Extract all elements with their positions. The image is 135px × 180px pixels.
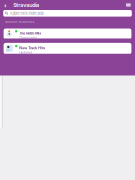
staticText: Stravaudia [13, 2, 39, 8]
button[interactable]: The Retro Mix [4, 28, 131, 39]
button[interactable]: Apple rock indie pop [3, 10, 132, 17]
button[interactable]: New Track Hits [4, 43, 131, 54]
staticText: RECENT SEARCHES [5, 20, 34, 24]
staticText: The Retro Mix [19, 31, 41, 35]
staticText: Apple rock indie pop [9, 11, 43, 16]
staticText: Updated [19, 51, 32, 54]
button[interactable]: Back [0, 0, 13, 10]
staticText: Community [19, 36, 37, 40]
button[interactable]: Menu [124, 1, 133, 9]
staticText: New Track Hits [19, 46, 45, 50]
